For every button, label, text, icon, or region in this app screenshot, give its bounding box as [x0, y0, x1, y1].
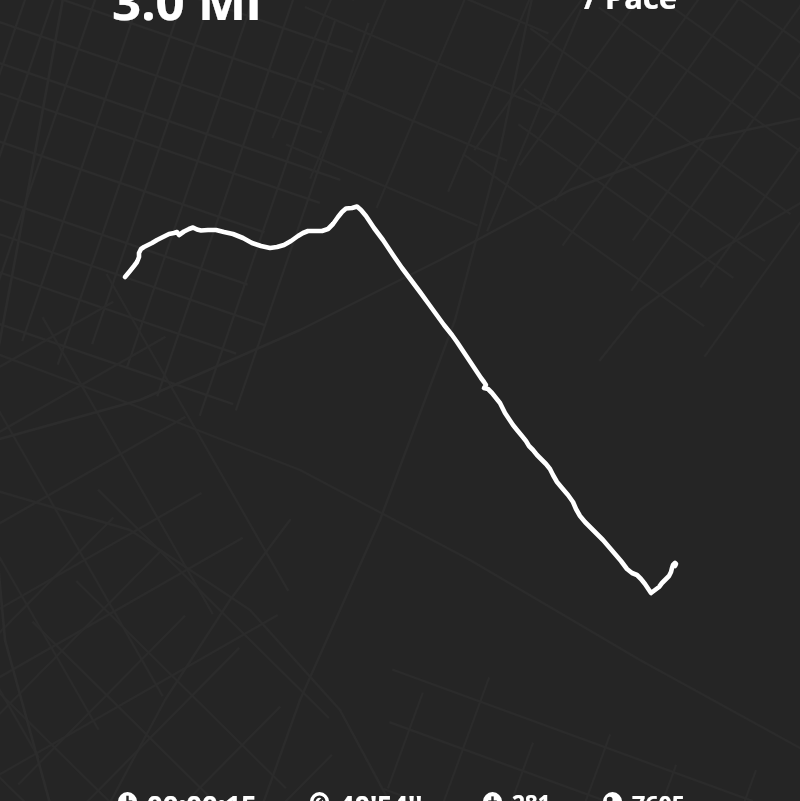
staticText: 281: [512, 788, 551, 801]
staticText: 7605: [632, 788, 686, 801]
button[interactable]: Calories burned: [483, 792, 551, 801]
staticText: 00:00:15: [147, 786, 257, 801]
staticText: 3.0 Mi: [112, 0, 262, 34]
button[interactable]: Steps: [603, 792, 686, 801]
staticText: 40'54'': [339, 786, 423, 801]
button[interactable]: Average pace: [310, 792, 423, 801]
button[interactable]: Elapsed time: [118, 792, 257, 801]
staticText: / Pace: [584, 0, 678, 18]
button[interactable]: Route map: [0, 0, 800, 801]
